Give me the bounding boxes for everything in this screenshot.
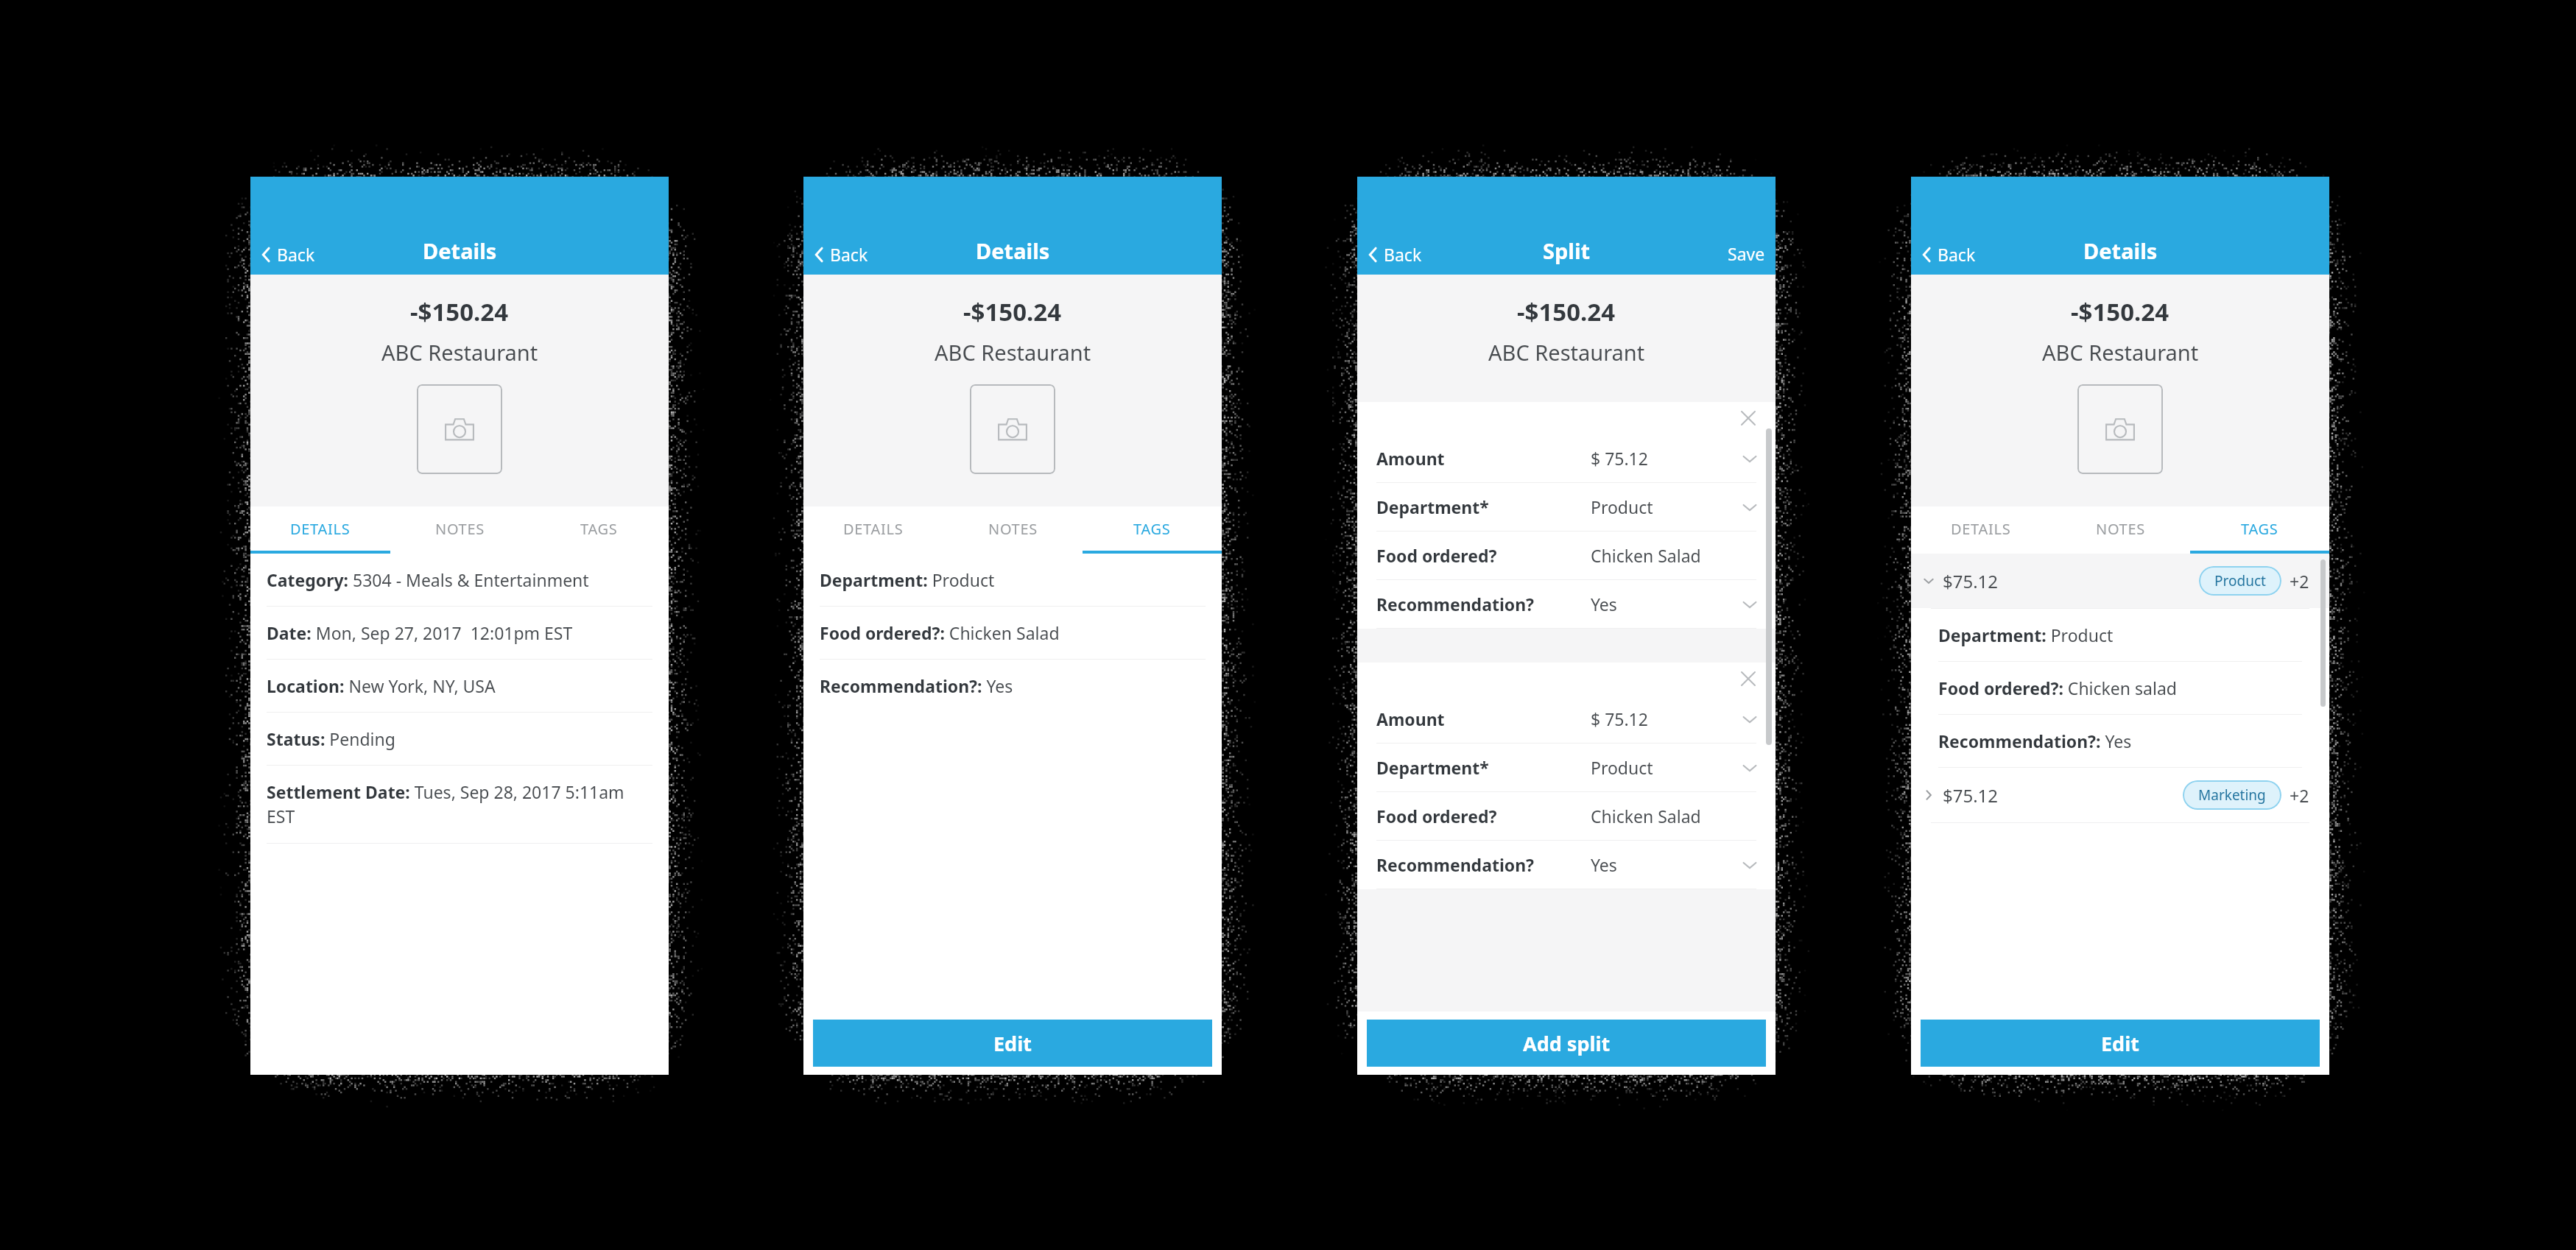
staticText: -$150.24 [2071, 295, 2169, 328]
staticText: $ 75.12 [1591, 447, 1648, 470]
staticText: TAGS [2241, 519, 2278, 539]
staticText: Food ordered? [1376, 805, 1497, 827]
button[interactable]: Expand [1911, 768, 2329, 822]
staticText: Chicken Salad [1591, 544, 1701, 567]
staticText: Chicken Salad [1591, 805, 1701, 827]
staticText: Details [423, 236, 497, 265]
button[interactable]: TAGS [1083, 506, 1222, 551]
staticText: NOTES [435, 519, 485, 539]
staticText: NOTES [988, 519, 1038, 539]
staticText: ABC Restaurant [381, 338, 538, 367]
other: Remove split [1742, 412, 1755, 425]
staticText: Marketing [2198, 785, 2266, 805]
staticText: $ 75.12 [1591, 707, 1648, 730]
staticText: Back [1384, 243, 1422, 266]
button[interactable]: Recommendation? [1357, 580, 1776, 628]
button[interactable]: DETAILS [803, 506, 943, 551]
staticText: Department* [1376, 756, 1489, 779]
staticText: Product [1591, 756, 1653, 779]
button[interactable]: Food ordered?: Chicken salad [1911, 662, 2329, 714]
button[interactable]: Amount [1357, 434, 1776, 482]
button[interactable]: Save [1716, 236, 1776, 275]
staticText: $75.12 [1943, 783, 1999, 808]
button[interactable]: NOTES [943, 506, 1083, 551]
staticText: DETAILS [1951, 519, 2011, 539]
button[interactable]: Collapse [1911, 554, 2329, 608]
staticText: TAGS [580, 519, 618, 539]
button[interactable]: Department: Product [803, 554, 1222, 606]
staticText: Back [277, 243, 315, 266]
button[interactable]: Back [250, 237, 325, 275]
staticText: +2 [2290, 784, 2309, 807]
button[interactable]: Edit [813, 1020, 1212, 1067]
button[interactable]: Location: New York, NY, USA [250, 660, 669, 712]
staticText: Category: 5304 - Meals & Entertainment [267, 568, 589, 591]
button[interactable]: TAGS [2190, 506, 2329, 551]
button[interactable]: Amount [1357, 695, 1776, 743]
staticText: Recommendation? [1376, 593, 1535, 615]
button[interactable]: Recommendation?: Yes [1911, 715, 2329, 767]
button[interactable]: Back [1911, 237, 1986, 275]
staticText: Recommendation?: Yes [1938, 730, 2132, 752]
button[interactable]: Back [803, 237, 879, 275]
staticText: Food ordered?: Chicken Salad [820, 621, 1060, 644]
staticText: Date: Mon, Sep 27, 2017 12:01pm EST [267, 621, 573, 644]
staticText: -$150.24 [410, 295, 509, 328]
staticText: $75.12 [1943, 569, 1999, 593]
button[interactable]: Add receipt photo [2077, 384, 2163, 474]
button[interactable]: Department* [1357, 483, 1776, 531]
staticText: Food ordered? [1376, 544, 1497, 567]
other: Expand [1922, 788, 1935, 802]
staticText: -$150.24 [963, 295, 1062, 328]
button[interactable]: Add split [1367, 1020, 1766, 1067]
staticText: Status: Pending [267, 727, 395, 750]
staticText: Recommendation?: Yes [820, 674, 1013, 697]
button[interactable]: Category: 5304 - Meals & Entertainment [250, 554, 669, 606]
staticText: DETAILS [843, 519, 904, 539]
staticText: Department: Product [820, 568, 995, 591]
staticText: Amount [1376, 707, 1445, 730]
staticText: Yes [1591, 853, 1617, 876]
button[interactable]: Date: Mon, Sep 27, 2017 12:01pm EST [250, 607, 669, 659]
button[interactable]: Food ordered?: Chicken Salad [803, 607, 1222, 659]
button[interactable]: Status: Pending [250, 713, 669, 765]
button[interactable]: Recommendation?: Yes [803, 660, 1222, 712]
staticText: Food ordered?: Chicken salad [1938, 677, 2177, 699]
other: Collapse [1922, 574, 1935, 587]
staticText: Save [1728, 242, 1765, 265]
staticText: DETAILS [290, 519, 351, 539]
staticText: Department* [1376, 495, 1489, 518]
staticText: +2 [2290, 570, 2309, 593]
button[interactable]: Recommendation? [1357, 841, 1776, 889]
staticText: NOTES [2096, 519, 2145, 539]
staticText: TAGS [1133, 519, 1171, 539]
button[interactable]: Department* [1357, 744, 1776, 791]
staticText: Edit [993, 1030, 1032, 1057]
staticText: Product [2214, 571, 2266, 590]
staticText: Details [2083, 236, 2158, 265]
button[interactable]: Add receipt photo [417, 384, 502, 474]
staticText: Location: New York, NY, USA [267, 674, 496, 697]
staticText: Details [976, 236, 1050, 265]
button[interactable]: Add receipt photo [970, 384, 1055, 474]
staticText: ABC Restaurant [1488, 338, 1645, 367]
staticText: Back [1938, 243, 1976, 266]
button[interactable]: NOTES [2051, 506, 2190, 551]
button[interactable]: DETAILS [1911, 506, 2051, 551]
button[interactable]: Back [1357, 237, 1432, 275]
staticText: ABC Restaurant [2042, 338, 2199, 367]
staticText: Recommendation? [1376, 853, 1535, 876]
staticText: Yes [1591, 593, 1617, 615]
staticText: Department: Product [1938, 624, 2114, 646]
staticText: Product [1591, 495, 1653, 518]
button[interactable]: DETAILS [250, 506, 390, 551]
button[interactable]: Food ordered? [1357, 532, 1776, 579]
button[interactable]: Food ordered? [1357, 792, 1776, 840]
button[interactable]: Department: Product [1911, 609, 2329, 661]
button[interactable]: Settlement Date: Tues, Sep 28, 2017 5:11… [250, 766, 669, 843]
button[interactable]: TAGS [529, 506, 669, 551]
button[interactable]: Edit [1921, 1020, 2320, 1067]
button[interactable]: NOTES [390, 506, 529, 551]
staticText: Edit [2101, 1030, 2139, 1057]
staticText: Add split [1523, 1030, 1611, 1057]
